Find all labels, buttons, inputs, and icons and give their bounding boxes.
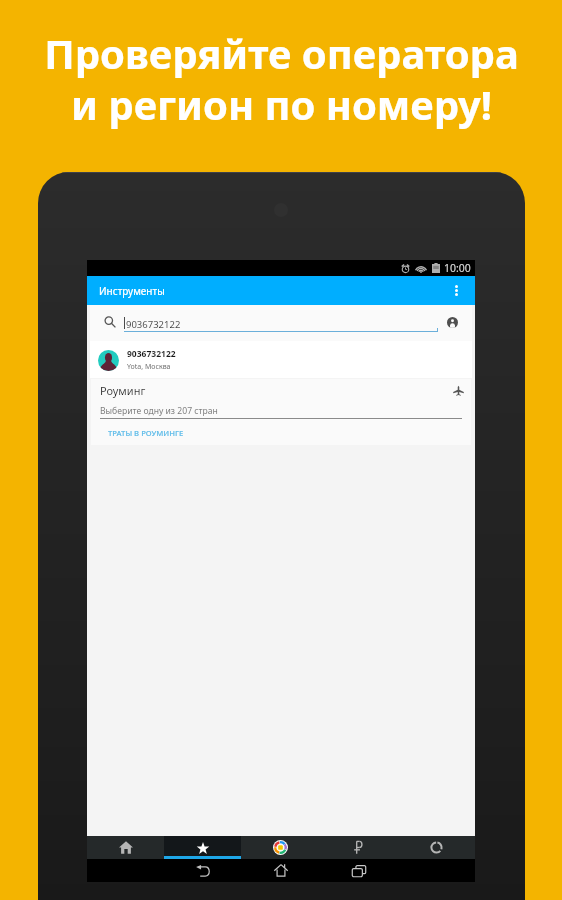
button[interactable]: Favorites tab: [164, 836, 241, 859]
button[interactable]: Home tab: [87, 836, 164, 859]
staticText: Выберите одну из 207 стран: [100, 405, 218, 417]
staticText: 9036732122: [126, 318, 181, 331]
button[interactable]: ТРАТЫ В РОУМИНГЕ: [108, 428, 184, 438]
button[interactable]: Recents: [320, 859, 398, 882]
staticText: Роуминг: [100, 383, 146, 398]
button[interactable]: Back: [164, 859, 242, 882]
staticText: Yota, Москва: [127, 362, 171, 372]
button[interactable]: Services tab: [241, 836, 319, 859]
staticText: Проверяйте оператора и регион по номеру!: [44, 26, 519, 132]
staticText: ТРАТЫ В РОУМИНГЕ: [108, 428, 184, 438]
staticText: 10:00: [444, 261, 471, 275]
button[interactable]: More options: [442, 276, 471, 305]
staticText: 9036732122: [127, 348, 176, 360]
button[interactable]: Airplane mode: [450, 382, 466, 398]
button[interactable]: Refresh tab: [397, 836, 475, 859]
button[interactable]: Home: [242, 859, 320, 882]
button[interactable]: Account: [446, 316, 459, 329]
staticText: Инструменты: [99, 284, 165, 298]
button[interactable]: 9036732122: [90, 341, 472, 378]
button[interactable]: Payments tab: [319, 836, 397, 859]
